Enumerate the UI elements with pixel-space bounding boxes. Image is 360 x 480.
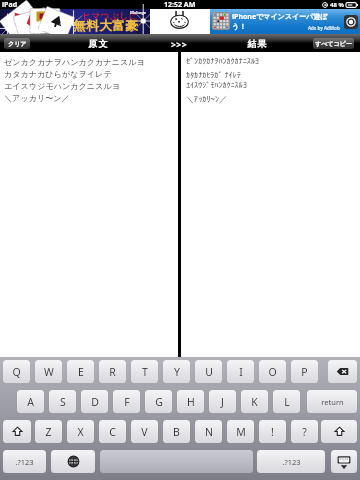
staticText: 無料大富豪 — [73, 18, 139, 34]
staticText: ヒマつぶしに — [82, 11, 138, 22]
button[interactable]: K — [241, 390, 268, 413]
staticText: Y — [174, 365, 180, 379]
staticText: W — [44, 365, 54, 379]
button[interactable]: S — [49, 390, 76, 413]
staticText: I — [239, 365, 243, 379]
staticText: エイスウジモハンカクニスルヨ — [4, 81, 120, 91]
button[interactable]: Q — [3, 360, 30, 383]
staticText: ? — [302, 425, 307, 439]
staticText: E — [78, 365, 84, 379]
button[interactable]: L — [273, 390, 300, 413]
button[interactable]: D — [81, 390, 108, 413]
staticText: 結果 — [247, 38, 267, 49]
button[interactable]: AdMob info — [344, 15, 358, 29]
staticText: .?123 — [282, 457, 301, 467]
staticText: ｴｲｽｳｼﾞﾓﾊﾝｶｸﾆｽﾙﾖ — [186, 81, 247, 89]
button[interactable]: すべてコピー — [313, 38, 354, 49]
staticText: O — [268, 365, 277, 379]
button[interactable]: E — [67, 360, 94, 383]
button[interactable]: T — [131, 360, 158, 383]
button[interactable]: .?123 — [257, 450, 325, 473]
button[interactable]: U — [195, 360, 222, 383]
staticText: G — [155, 395, 163, 409]
staticText: B — [173, 425, 180, 439]
staticText: Mobage — [130, 10, 147, 15]
staticText: iPad — [2, 0, 18, 9]
button[interactable]: P — [291, 360, 318, 383]
staticText: Ads by AdMob — [308, 25, 340, 31]
staticText: K — [251, 395, 258, 409]
button[interactable]: B — [163, 420, 190, 443]
staticText: 原文 — [88, 38, 108, 49]
button[interactable]: G — [145, 390, 172, 413]
staticText: 48 % — [330, 1, 344, 9]
button[interactable]: .?123 — [3, 450, 46, 473]
staticText: iPhoneでマインスイーパ遊ぼ — [232, 12, 328, 22]
staticText: X — [77, 425, 84, 439]
staticText: Z — [45, 425, 52, 439]
staticText: J — [221, 395, 224, 409]
button[interactable]: Space — [100, 450, 253, 473]
staticText: M — [236, 425, 246, 439]
button[interactable]: Y — [163, 360, 190, 383]
button[interactable]: N — [195, 420, 222, 443]
button[interactable]: Shift — [3, 420, 31, 443]
button[interactable]: I — [227, 360, 254, 383]
staticText: return — [321, 397, 344, 407]
button[interactable]: M — [227, 420, 254, 443]
staticText: U — [205, 365, 213, 379]
button[interactable]: F — [113, 390, 140, 413]
button[interactable]: X — [67, 420, 94, 443]
staticText: S — [60, 395, 66, 409]
staticText: R — [109, 365, 116, 379]
staticText: クリア — [8, 40, 27, 48]
button[interactable]: A — [17, 390, 44, 413]
button[interactable]: W — [35, 360, 62, 383]
staticText: すべてコピー — [315, 40, 352, 48]
staticText: う！ — [232, 22, 247, 31]
button[interactable]: return — [307, 390, 357, 413]
button[interactable]: ! — [259, 420, 286, 443]
button[interactable]: H — [177, 390, 204, 413]
button[interactable]: Advertisement — [0, 9, 150, 34]
staticText: カタカナカひらがなヲイレテ — [4, 69, 112, 79]
staticText: C — [109, 425, 116, 439]
staticText: .?123 — [15, 457, 34, 467]
staticText: N — [205, 425, 213, 439]
button[interactable]: Globe — [51, 450, 95, 473]
staticText: ＼アッカリ〜ン／ — [4, 93, 70, 103]
button[interactable]: O — [259, 360, 286, 383]
button[interactable]: Shift — [321, 420, 357, 443]
staticText: V — [141, 425, 148, 439]
button[interactable]: クリア — [4, 38, 30, 49]
button[interactable]: ? — [291, 420, 318, 443]
staticText: T — [142, 365, 148, 379]
staticText: >>> — [171, 39, 188, 51]
staticText: ゼンカクカナヲハンカクカナニスルヨ — [4, 57, 145, 67]
staticText: H — [187, 395, 195, 409]
staticText: ｾﾞﾝｶｸｶﾅｦﾊﾝｶｸｶﾅﾆｽﾙﾖ — [186, 57, 259, 65]
staticText: F — [124, 395, 130, 409]
staticText: A — [27, 395, 34, 409]
button[interactable]: Backspace — [328, 360, 357, 383]
staticText: ! — [271, 425, 274, 439]
staticText: P — [301, 365, 308, 379]
button[interactable]: R — [99, 360, 126, 383]
button[interactable]: Z — [35, 420, 62, 443]
staticText: Q — [12, 365, 21, 379]
button[interactable]: C — [99, 420, 126, 443]
staticText: ＼ｱｯｶﾘ~ﾝ／ — [186, 93, 228, 104]
button[interactable]: Hide — [331, 450, 357, 473]
staticText: ｶﾀｶﾅｶﾋﾗｶﾞ ﾅｲﾚﾃ — [186, 69, 241, 80]
staticText: D — [91, 395, 99, 409]
staticText: 12:52 AM — [164, 0, 196, 9]
button[interactable]: V — [131, 420, 158, 443]
button[interactable]: J — [209, 390, 236, 413]
staticText: L — [284, 395, 290, 409]
